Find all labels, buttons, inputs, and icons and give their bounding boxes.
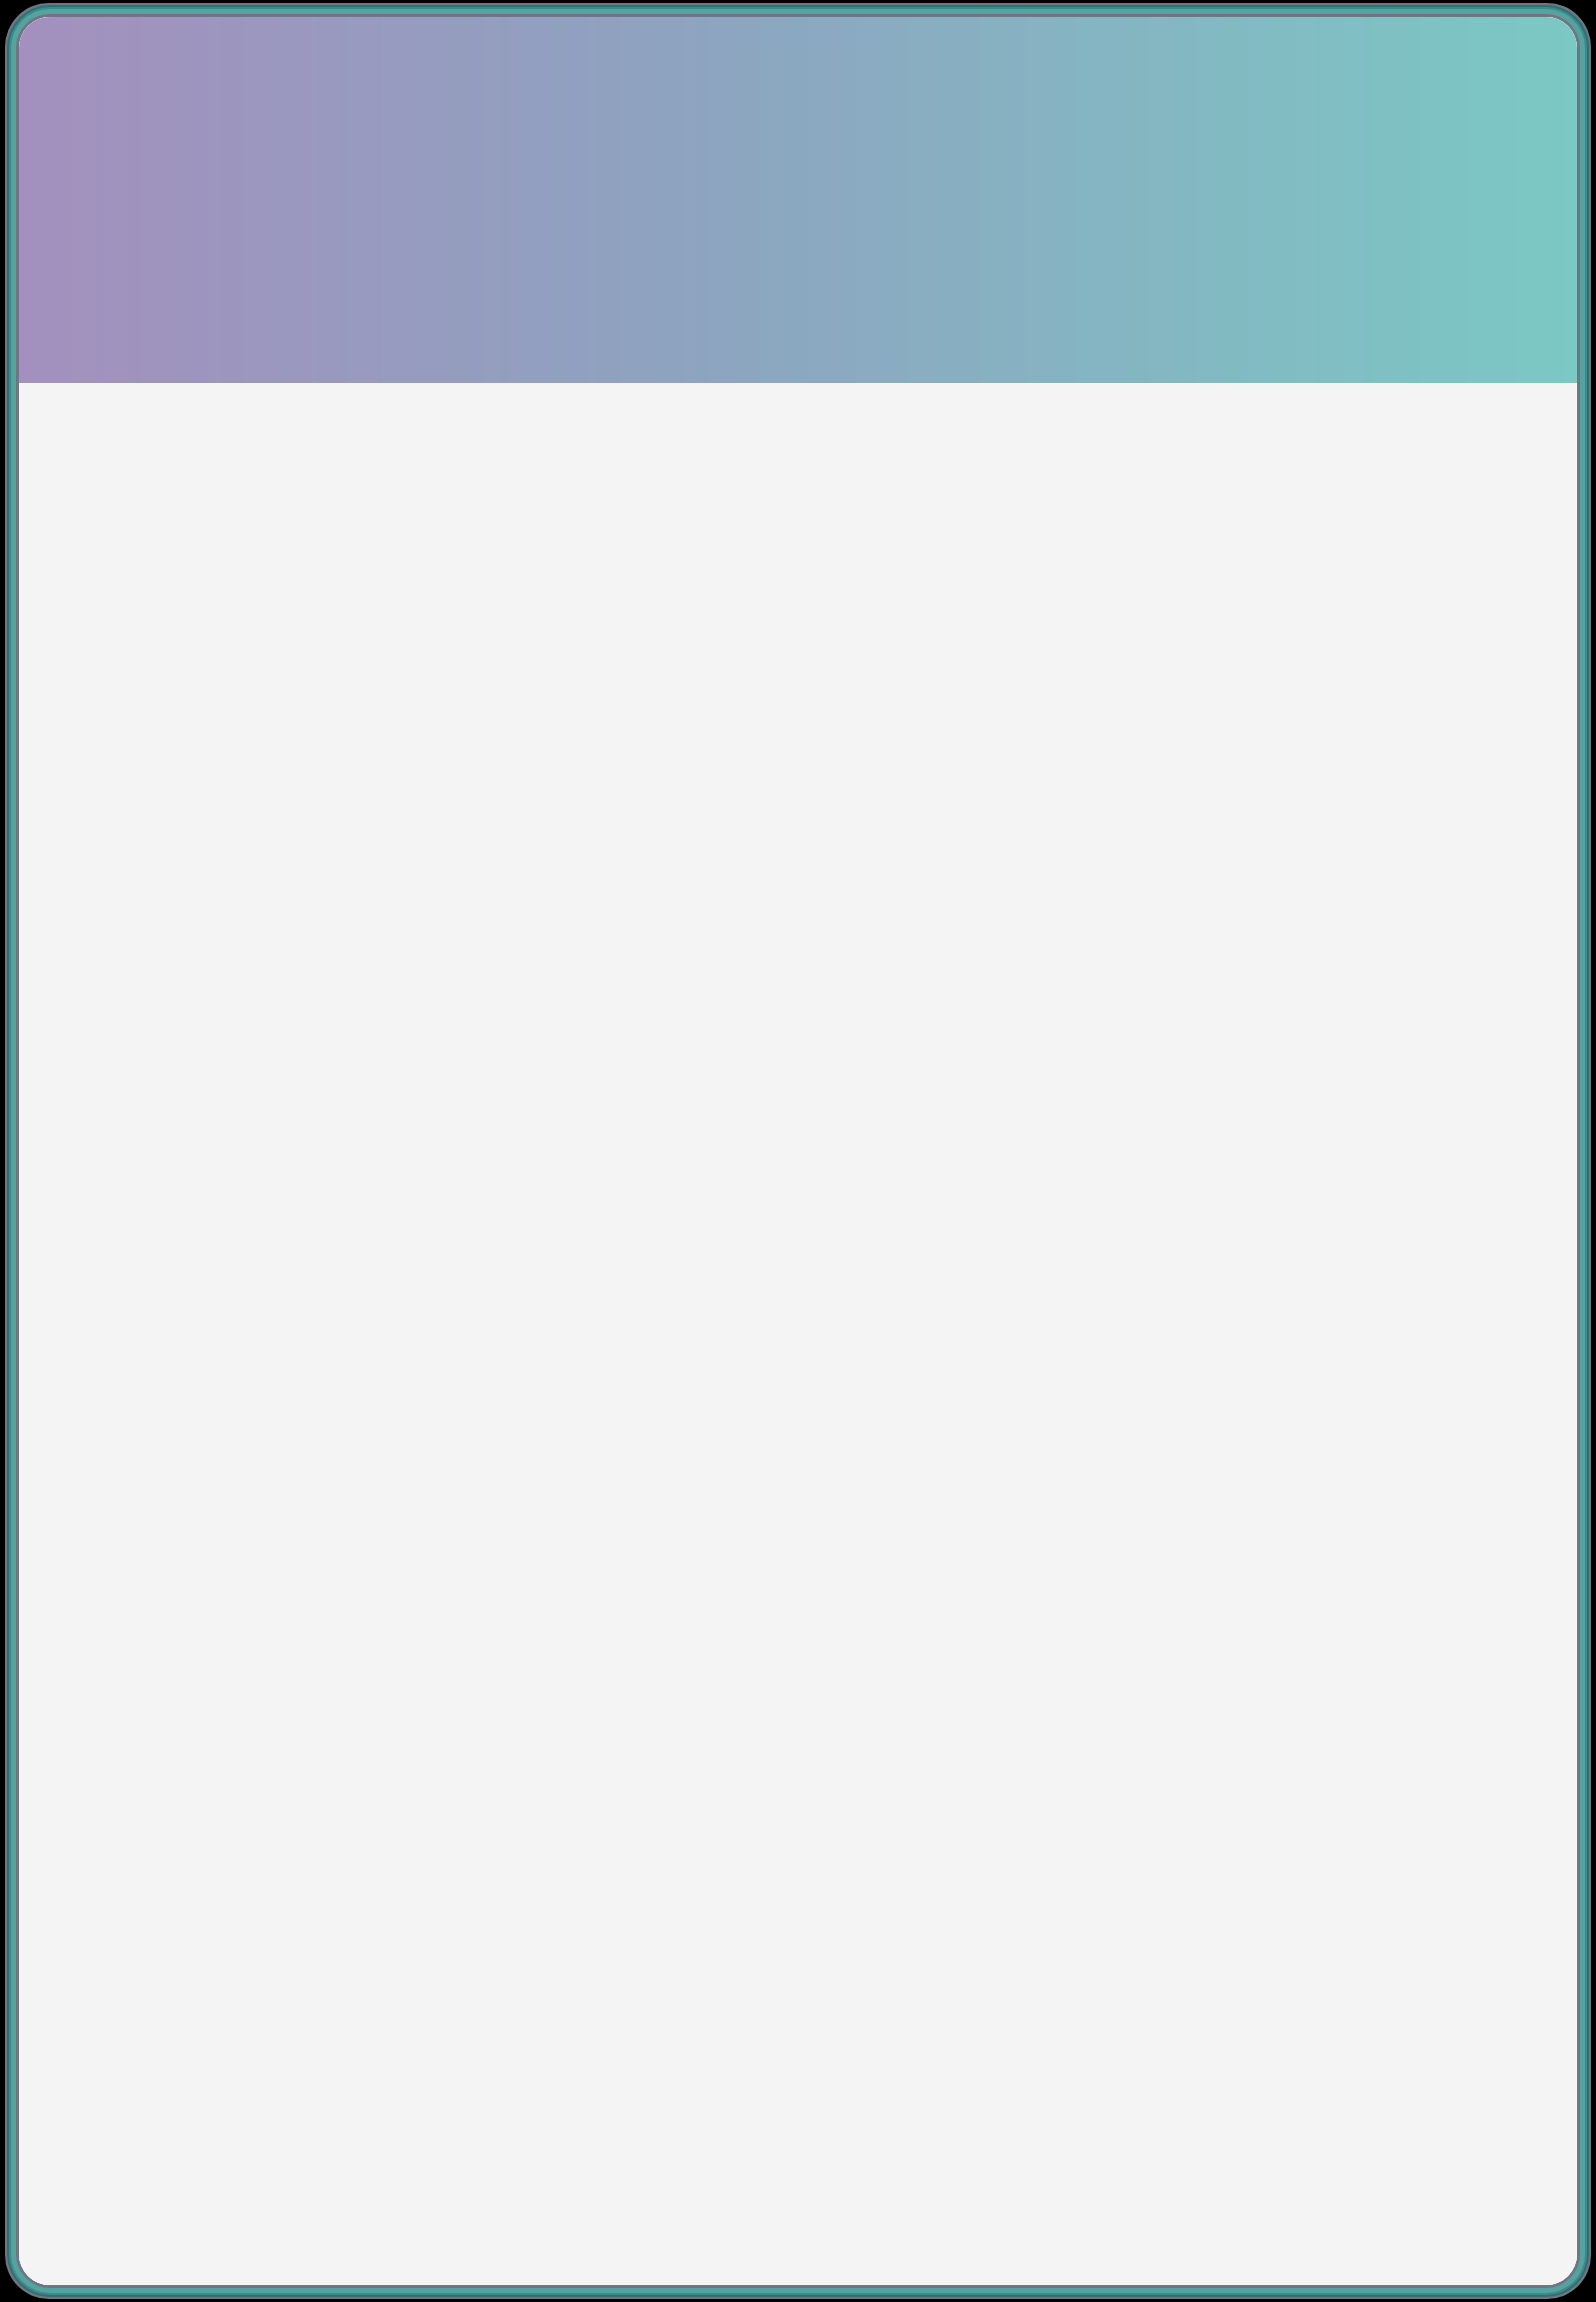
button[interactable]: App header [19, 17, 1577, 383]
